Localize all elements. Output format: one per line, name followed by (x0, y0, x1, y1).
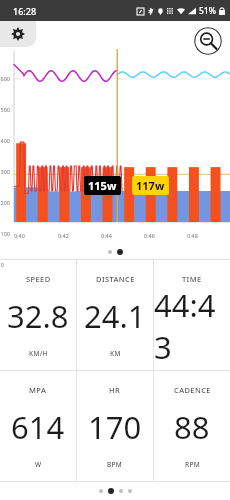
staticText: 0:40 (14, 232, 25, 239)
button[interactable]: MPA (0, 371, 76, 481)
staticText: 0:44 (101, 232, 112, 239)
button[interactable]: DISTANCE (77, 260, 153, 370)
staticText: MPA (29, 385, 47, 395)
staticText: 100 (0, 230, 10, 237)
staticText: 170 (88, 406, 142, 448)
button[interactable]: Zoom out (194, 27, 222, 55)
staticText: 51% (199, 5, 216, 17)
staticText: TIME (182, 274, 202, 284)
staticText: 500 (0, 106, 10, 113)
staticText: 32.8 (7, 295, 69, 337)
staticText: 0:42 (58, 232, 69, 239)
button[interactable]: 115w (84, 176, 121, 195)
staticText: HR (109, 385, 121, 395)
staticText: KM (110, 349, 121, 358)
staticText: CADENCE (174, 385, 211, 395)
staticText: SPEED (26, 274, 51, 284)
staticText: 0:48 (187, 232, 198, 239)
staticText: 117w (136, 178, 165, 193)
staticText: 600 (0, 75, 10, 82)
button[interactable]: Settings (0, 21, 36, 47)
button[interactable]: SPEED (0, 260, 76, 370)
staticText: 0 (0, 261, 4, 268)
staticText: 16:28 (13, 5, 37, 17)
staticText: DISTANCE (96, 274, 135, 284)
staticText: KM/H (29, 349, 48, 358)
staticText: 614 (11, 406, 65, 448)
staticText: 88 (174, 406, 210, 448)
staticText: RPM (185, 460, 200, 469)
button[interactable]: HR (77, 371, 153, 481)
button[interactable]: TIME (154, 260, 230, 370)
staticText: W (35, 460, 42, 469)
staticText: 400 (0, 137, 10, 144)
staticText: 115w (88, 178, 117, 193)
staticText: 44:43 (154, 284, 230, 368)
staticText: BPM (107, 460, 123, 469)
button[interactable]: CADENCE (154, 371, 230, 481)
staticText: 24.1 (84, 295, 146, 337)
staticText: 0:46 (144, 232, 155, 239)
staticText: 300 (0, 168, 10, 175)
staticText: 200 (0, 199, 10, 206)
button[interactable]: 117w (132, 176, 169, 195)
